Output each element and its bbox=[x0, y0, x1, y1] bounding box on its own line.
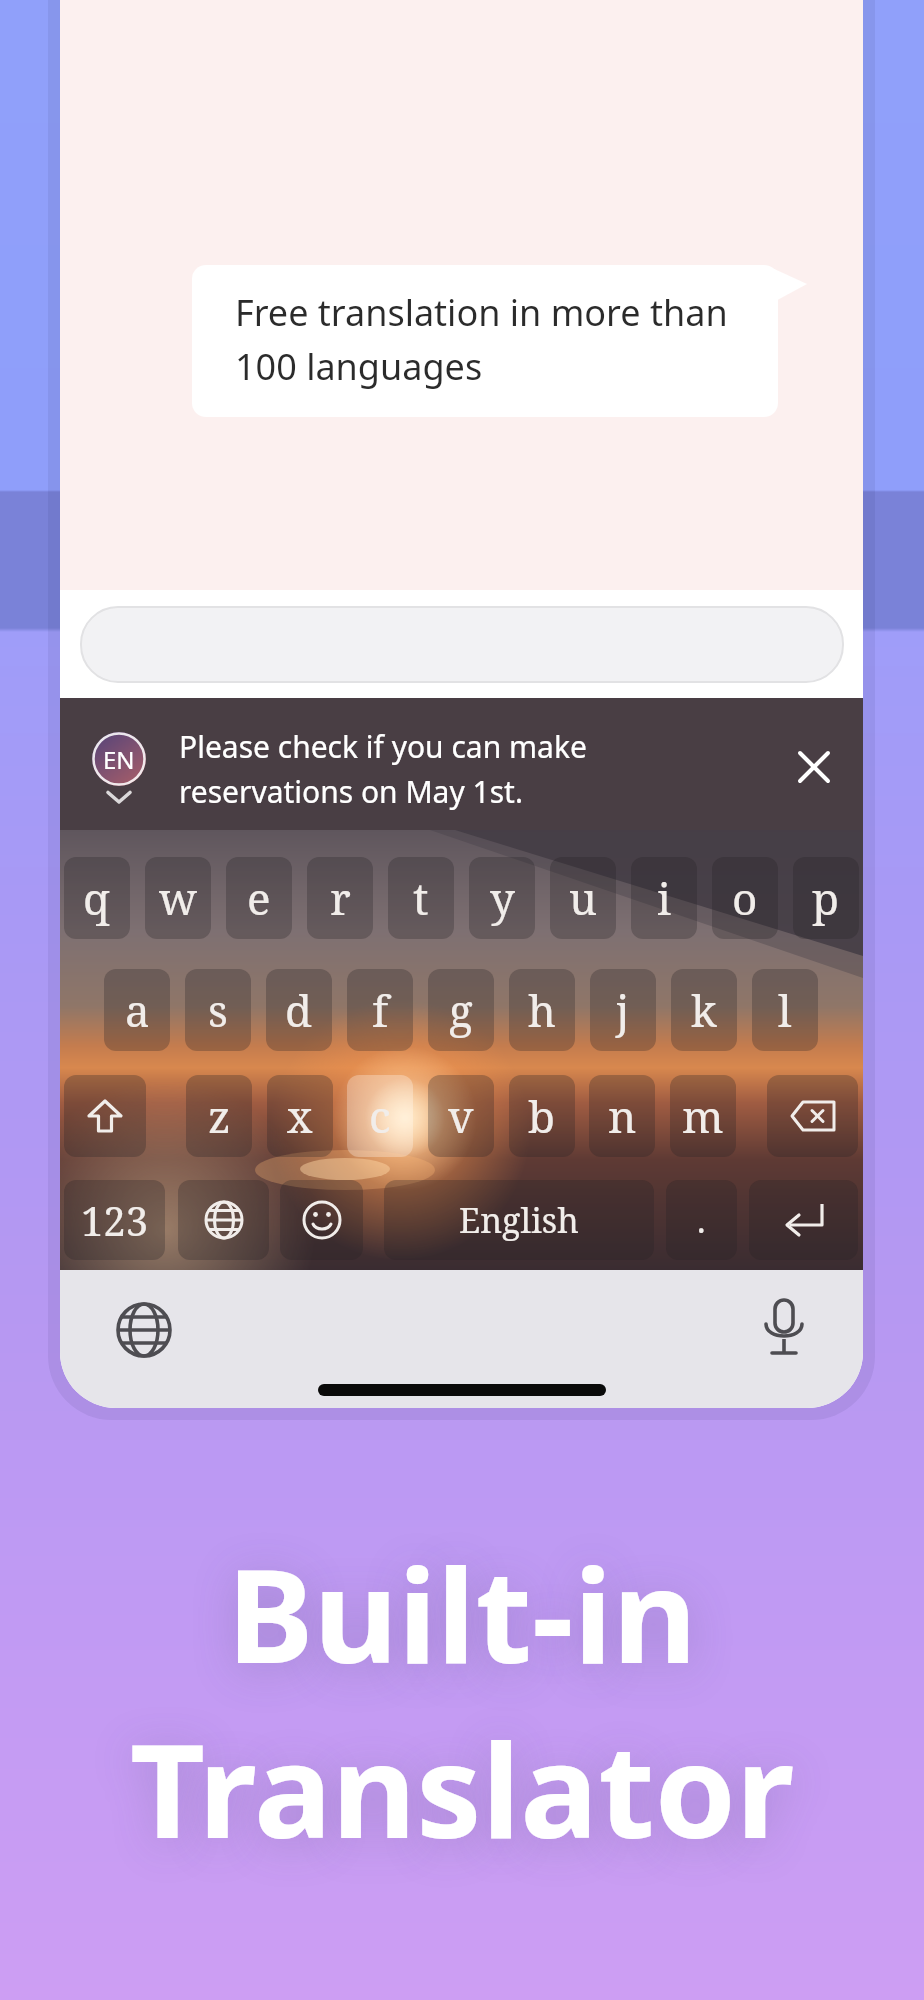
staticText: e bbox=[247, 868, 271, 928]
button[interactable]: r bbox=[307, 857, 373, 939]
staticText: g bbox=[449, 980, 473, 1040]
button[interactable]: e bbox=[226, 857, 292, 939]
staticText: EN bbox=[103, 743, 135, 776]
button[interactable]: u bbox=[550, 857, 616, 939]
staticText: z bbox=[208, 1086, 231, 1146]
button[interactable] bbox=[792, 745, 836, 789]
staticText: x bbox=[287, 1086, 313, 1146]
staticText: English bbox=[459, 1197, 579, 1243]
staticText: i bbox=[657, 868, 672, 928]
staticText: Please check if you can make reservation… bbox=[179, 726, 587, 811]
button[interactable] bbox=[749, 1180, 858, 1260]
button[interactable]: Free translation in more than 100 langua… bbox=[192, 265, 778, 417]
staticText: q bbox=[83, 868, 111, 928]
staticText: o bbox=[732, 868, 758, 928]
button[interactable]: h bbox=[509, 969, 575, 1051]
staticText: m bbox=[682, 1086, 724, 1146]
staticText: u bbox=[569, 868, 597, 928]
staticText: Translator bbox=[0, 1699, 924, 1876]
button[interactable]: v bbox=[428, 1075, 494, 1157]
button[interactable]: a bbox=[104, 969, 170, 1051]
staticText: n bbox=[608, 1086, 637, 1146]
button[interactable]: EN bbox=[60, 698, 863, 830]
button[interactable]: n bbox=[589, 1075, 655, 1157]
button[interactable]: s bbox=[185, 969, 251, 1051]
button[interactable]: d bbox=[266, 969, 332, 1051]
button[interactable] bbox=[767, 1075, 858, 1157]
button[interactable] bbox=[81, 607, 843, 682]
button[interactable]: g bbox=[428, 969, 494, 1051]
button[interactable]: w bbox=[145, 857, 211, 939]
staticText: a bbox=[125, 980, 150, 1040]
staticText: t bbox=[413, 868, 429, 928]
button[interactable]: k bbox=[671, 969, 737, 1051]
staticText: p bbox=[812, 868, 840, 928]
button[interactable]: l bbox=[752, 969, 818, 1051]
button[interactable]: b bbox=[509, 1075, 575, 1157]
button[interactable]: q bbox=[64, 857, 130, 939]
button[interactable] bbox=[178, 1180, 269, 1260]
staticText: l bbox=[778, 980, 792, 1040]
button[interactable]: c bbox=[347, 1075, 413, 1157]
button[interactable]: English bbox=[384, 1180, 654, 1260]
staticText: h bbox=[528, 980, 556, 1040]
button[interactable]: o bbox=[712, 857, 778, 939]
button[interactable]: x bbox=[267, 1075, 333, 1157]
staticText: k bbox=[691, 980, 717, 1040]
staticText: s bbox=[208, 980, 228, 1040]
button[interactable]: i bbox=[631, 857, 697, 939]
button[interactable]: y bbox=[469, 857, 535, 939]
staticText: b bbox=[528, 1086, 556, 1146]
staticText: 123 bbox=[81, 1193, 149, 1247]
staticText: c bbox=[369, 1086, 391, 1146]
staticText: f bbox=[372, 980, 389, 1040]
button[interactable]: m bbox=[670, 1075, 736, 1157]
button[interactable] bbox=[110, 1296, 178, 1364]
button[interactable]: j bbox=[590, 969, 656, 1051]
staticText: w bbox=[159, 868, 197, 928]
staticText: j bbox=[616, 980, 630, 1040]
button[interactable]: 123 bbox=[64, 1180, 165, 1260]
button[interactable] bbox=[280, 1180, 363, 1260]
staticText: . bbox=[697, 1197, 706, 1243]
button[interactable] bbox=[64, 1075, 146, 1157]
button[interactable]: . bbox=[666, 1180, 737, 1260]
button[interactable]: p bbox=[793, 857, 859, 939]
button[interactable]: f bbox=[347, 969, 413, 1051]
button[interactable]: t bbox=[388, 857, 454, 939]
button[interactable]: z bbox=[186, 1075, 252, 1157]
staticText: v bbox=[448, 1086, 474, 1146]
staticText: d bbox=[285, 980, 313, 1040]
staticText: Built-in bbox=[0, 1524, 924, 1701]
staticText: Free translation in more than 100 langua… bbox=[235, 288, 728, 390]
button[interactable] bbox=[750, 1296, 818, 1364]
staticText: r bbox=[330, 868, 351, 928]
staticText: y bbox=[490, 868, 515, 928]
